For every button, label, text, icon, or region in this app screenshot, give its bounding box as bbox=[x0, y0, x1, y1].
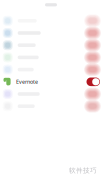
button[interactable] bbox=[0, 88, 101, 100]
button[interactable]: Evernote bbox=[0, 76, 101, 88]
button[interactable] bbox=[0, 15, 101, 27]
button[interactable] bbox=[0, 63, 101, 76]
button[interactable] bbox=[0, 51, 101, 63]
button[interactable] bbox=[0, 100, 101, 112]
staticText: 软件技巧 bbox=[69, 166, 97, 174]
button[interactable] bbox=[0, 27, 101, 39]
button[interactable] bbox=[0, 39, 101, 51]
staticText: Evernote bbox=[16, 78, 38, 85]
